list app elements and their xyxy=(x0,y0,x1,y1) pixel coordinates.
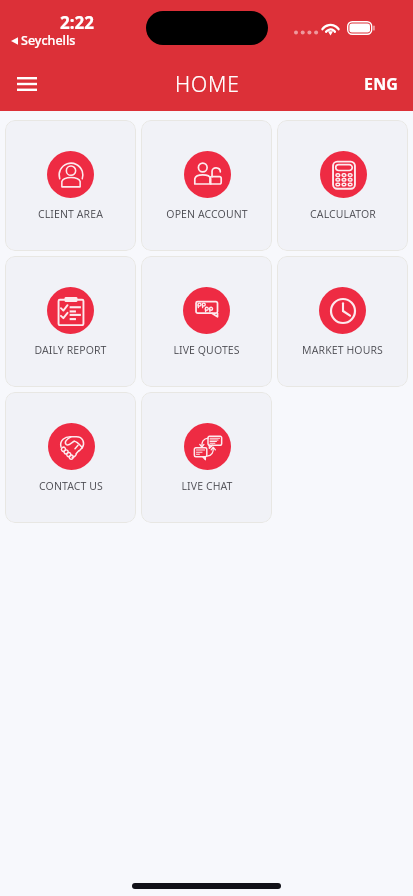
button[interactable]: OPEN ACCOUNT xyxy=(141,120,272,251)
staticText: OPEN ACCOUNT xyxy=(166,207,248,221)
staticText: CALCULATOR xyxy=(310,207,376,221)
staticText: Seychells xyxy=(21,32,76,49)
button[interactable]: CLIENT AREA xyxy=(5,120,136,251)
staticText: ENG xyxy=(364,73,399,95)
button[interactable]: LIVE CHAT xyxy=(141,392,272,523)
staticText: MARKET HOURS xyxy=(302,343,383,357)
button[interactable]: Open navigation menu xyxy=(8,65,46,103)
button[interactable]: LIVE QUOTES xyxy=(141,256,272,387)
staticText: LIVE QUOTES xyxy=(173,343,240,357)
staticText: CLIENT AREA xyxy=(38,207,103,221)
staticText: LIVE CHAT xyxy=(181,479,233,493)
button[interactable]: CONTACT US xyxy=(5,392,136,523)
button[interactable]: CALCULATOR xyxy=(277,120,408,251)
button[interactable]: DAILY REPORT xyxy=(5,256,136,387)
staticText: 2:22 xyxy=(60,11,94,34)
staticText: DAILY REPORT xyxy=(34,343,107,357)
button[interactable]: ENG xyxy=(356,65,407,103)
staticText: HOME xyxy=(175,70,240,99)
button[interactable]: MARKET HOURS xyxy=(277,256,408,387)
staticText: CONTACT US xyxy=(39,479,103,493)
